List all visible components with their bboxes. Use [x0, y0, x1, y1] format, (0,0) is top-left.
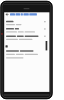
button[interactable]: [4, 26, 49, 34]
button[interactable]: [4, 44, 49, 49]
button[interactable]: [4, 19, 49, 26]
button[interactable]: [4, 34, 49, 42]
button[interactable]: [4, 12, 11, 19]
button[interactable]: [4, 49, 49, 60]
